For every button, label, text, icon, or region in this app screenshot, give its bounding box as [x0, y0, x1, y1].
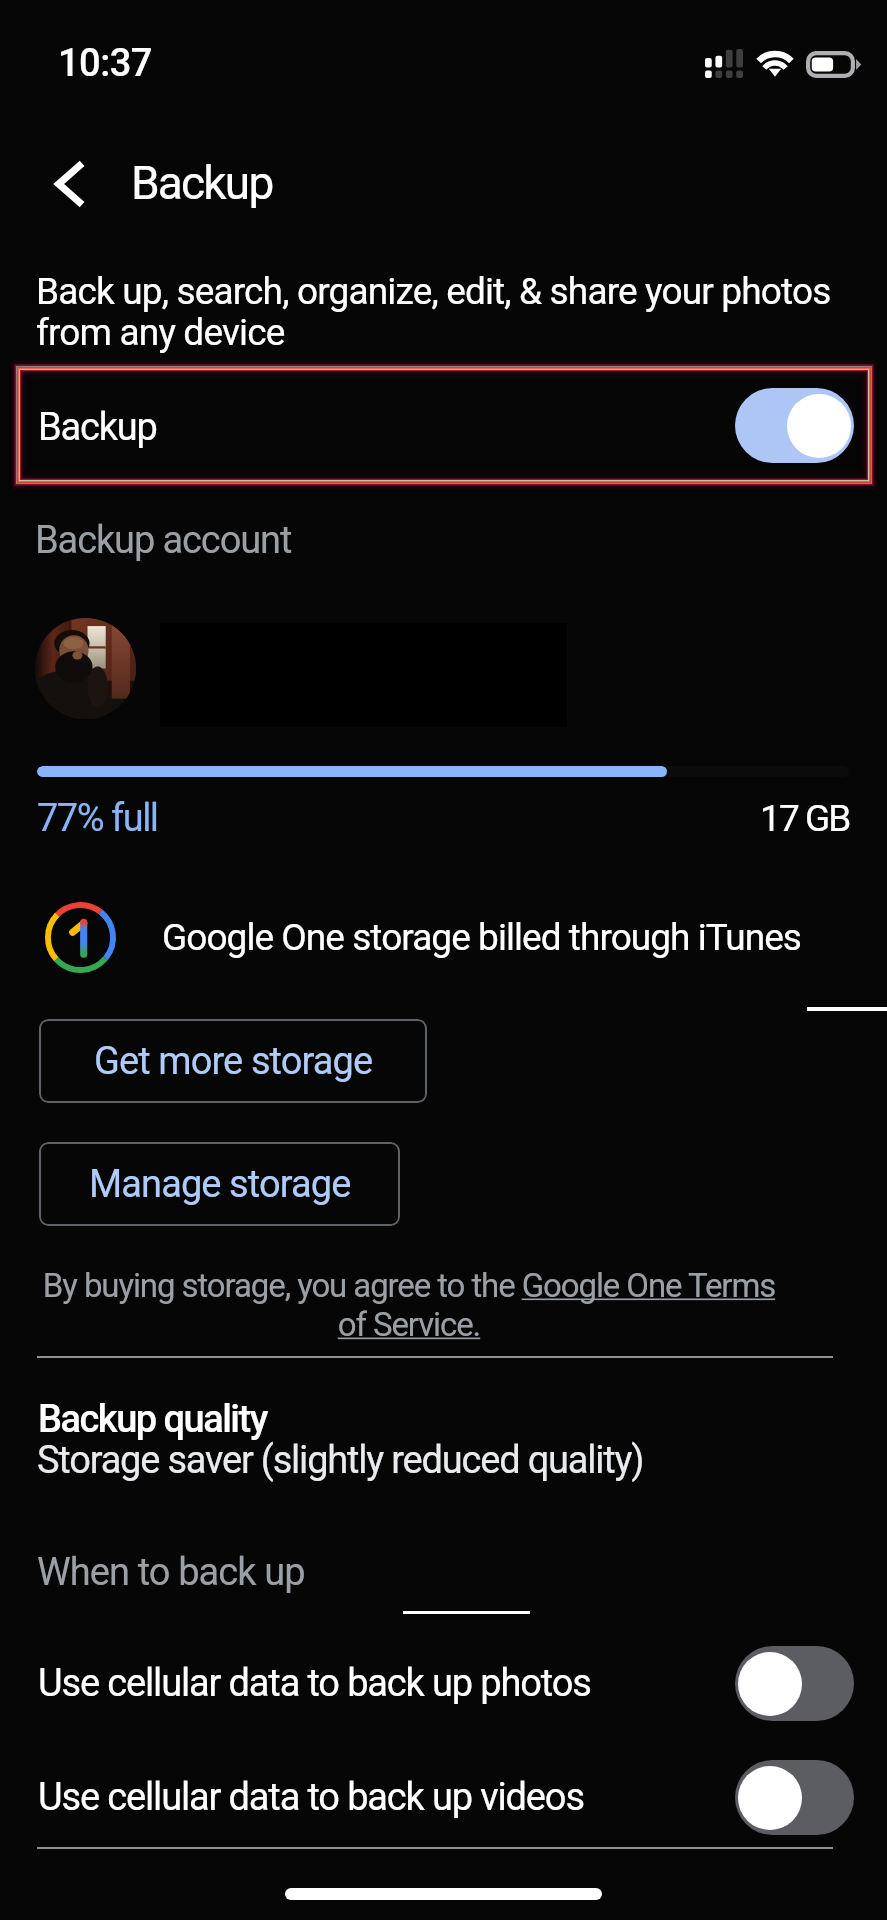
staticText: 10:37 — [58, 41, 152, 86]
button[interactable]: Use cellular data to back up photos — [0, 1645, 887, 1721]
button[interactable]: Google One storage billed through iTunes — [45, 902, 801, 973]
staticText: Google One storage billed through iTunes — [162, 916, 801, 959]
staticText: Backup account — [35, 518, 292, 563]
staticText: Get more storage — [94, 1039, 373, 1084]
staticText: Back up, search, organize, edit, & share… — [36, 270, 848, 354]
staticText: Storage saver (slightly reduced quality) — [37, 1438, 644, 1483]
staticText: Use cellular data to back up photos — [38, 1661, 591, 1706]
staticText: By buying storage, you agree to the Goog… — [34, 1266, 784, 1344]
button[interactable]: Backup quality — [0, 1385, 887, 1495]
staticText: Backup — [38, 405, 157, 450]
button[interactable]: Account photo — [35, 618, 136, 719]
button[interactable]: Switch off — [735, 1646, 854, 1721]
button[interactable]: Switch off — [735, 1760, 854, 1835]
staticText: 77% full — [37, 796, 158, 841]
button[interactable]: Manage storage — [39, 1142, 400, 1226]
staticText: Backup — [131, 156, 273, 210]
staticText: When to back up — [37, 1550, 305, 1595]
button[interactable]: Backup — [16, 366, 872, 484]
staticText: Use cellular data to back up videos — [38, 1775, 584, 1820]
staticText: Backup quality — [38, 1397, 267, 1442]
button[interactable]: By buying storage, you agree to the Goog… — [34, 1266, 784, 1344]
button[interactable]: Back — [38, 150, 106, 218]
button[interactable]: Get more storage — [39, 1019, 427, 1103]
button[interactable]: Switch on — [735, 388, 854, 463]
staticText: Manage storage — [89, 1162, 351, 1207]
button[interactable]: Use cellular data to back up videos — [0, 1759, 887, 1835]
staticText: 17 GB — [760, 797, 850, 840]
